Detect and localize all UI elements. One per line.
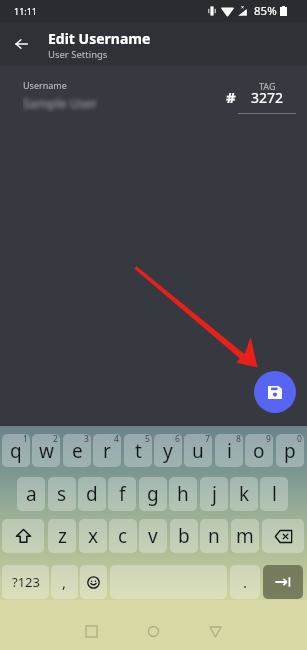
staticText: x bbox=[88, 523, 99, 549]
staticText: b bbox=[178, 523, 190, 549]
staticText: p bbox=[284, 438, 296, 464]
staticText: . bbox=[243, 572, 248, 592]
button[interactable]: Save bbox=[254, 371, 296, 413]
button[interactable]: b bbox=[170, 519, 198, 553]
staticText: l bbox=[272, 481, 277, 507]
staticText: y bbox=[163, 438, 173, 464]
staticText: 0 bbox=[297, 434, 302, 445]
button[interactable] bbox=[262, 519, 304, 553]
button[interactable]: g bbox=[139, 477, 167, 511]
staticText: h bbox=[177, 481, 189, 507]
button[interactable]: Recents bbox=[75, 615, 108, 648]
button[interactable] bbox=[263, 565, 303, 599]
staticText: 1 bbox=[23, 434, 28, 445]
staticText: s bbox=[57, 481, 67, 507]
button[interactable]: w bbox=[32, 434, 60, 467]
staticText: 6 bbox=[175, 434, 180, 445]
button[interactable]: p bbox=[276, 434, 304, 467]
button[interactable]: u bbox=[184, 434, 212, 467]
button[interactable]: Back bbox=[199, 615, 232, 648]
staticText: # bbox=[226, 87, 236, 107]
button[interactable]: t bbox=[124, 434, 152, 467]
button[interactable]: o bbox=[245, 434, 273, 467]
staticText: 85% bbox=[254, 3, 277, 19]
staticText: 3 bbox=[84, 434, 89, 445]
staticText: a bbox=[26, 481, 37, 507]
staticText: m bbox=[236, 523, 254, 549]
button[interactable]: h bbox=[169, 477, 197, 511]
button[interactable]: r bbox=[93, 434, 121, 467]
button[interactable]: Back bbox=[3, 22, 40, 66]
staticText: z bbox=[58, 523, 67, 549]
staticText: r bbox=[103, 438, 111, 464]
staticText: i bbox=[227, 438, 232, 464]
staticText: j bbox=[212, 481, 217, 507]
button[interactable]: j bbox=[200, 477, 228, 511]
button[interactable]: q bbox=[2, 434, 30, 467]
button[interactable]: e bbox=[63, 434, 91, 467]
button[interactable]: . bbox=[230, 565, 260, 599]
staticText: o bbox=[253, 438, 265, 464]
button[interactable]: Home bbox=[137, 615, 170, 648]
staticText: k bbox=[239, 481, 250, 507]
button[interactable]: z bbox=[48, 519, 76, 553]
button[interactable]: a bbox=[17, 477, 45, 511]
staticText: d bbox=[86, 481, 98, 507]
staticText: n bbox=[208, 523, 220, 549]
staticText: Sample User bbox=[23, 95, 98, 112]
staticText: 3272 bbox=[251, 88, 284, 107]
button[interactable]: k bbox=[230, 477, 258, 511]
staticText: ?123 bbox=[12, 573, 40, 591]
staticText: , bbox=[62, 572, 67, 592]
staticText: u bbox=[192, 438, 204, 464]
staticText: f bbox=[119, 481, 126, 507]
staticText: t bbox=[135, 438, 142, 464]
button[interactable]: y bbox=[154, 434, 182, 467]
staticText: c bbox=[118, 523, 128, 549]
button[interactable] bbox=[80, 565, 107, 599]
staticText: TAG bbox=[259, 80, 276, 92]
staticText: 2 bbox=[53, 434, 58, 445]
button[interactable]: l bbox=[260, 477, 288, 511]
button[interactable]: x bbox=[79, 519, 107, 553]
staticText: q bbox=[10, 438, 22, 464]
staticText: e bbox=[72, 438, 83, 464]
button[interactable] bbox=[110, 565, 227, 599]
staticText: Username bbox=[23, 79, 67, 91]
button[interactable]: , bbox=[51, 565, 78, 599]
button[interactable]: ?123 bbox=[2, 565, 49, 599]
staticText: 5 bbox=[145, 434, 150, 445]
staticText: w bbox=[39, 438, 54, 464]
button[interactable]: c bbox=[109, 519, 137, 553]
button[interactable]: i bbox=[215, 434, 243, 467]
button[interactable]: s bbox=[48, 477, 76, 511]
button[interactable]: f bbox=[108, 477, 136, 511]
button[interactable]: m bbox=[231, 519, 259, 553]
staticText: User Settings bbox=[48, 48, 108, 61]
staticText: 11:11 bbox=[14, 5, 38, 17]
staticText: v bbox=[148, 523, 158, 549]
staticText: 7 bbox=[205, 434, 210, 445]
staticText: 8 bbox=[236, 434, 241, 445]
staticText: 9 bbox=[266, 434, 271, 445]
staticText: Edit Username bbox=[48, 29, 151, 48]
button[interactable]: n bbox=[200, 519, 228, 553]
button[interactable]: v bbox=[139, 519, 167, 553]
staticText: g bbox=[147, 481, 159, 507]
button[interactable]: d bbox=[78, 477, 106, 511]
staticText: 4 bbox=[114, 434, 119, 445]
button[interactable] bbox=[2, 519, 44, 553]
